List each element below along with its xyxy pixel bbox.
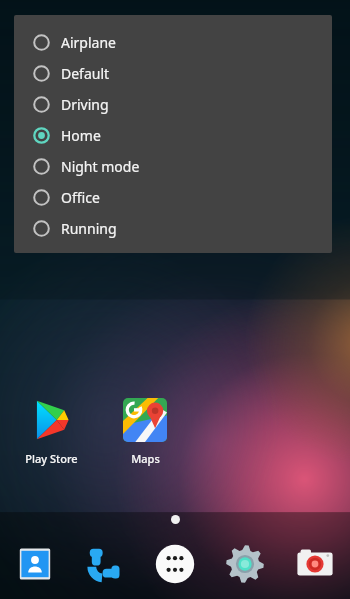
staticText: Office bbox=[61, 188, 100, 207]
staticText: Night mode bbox=[61, 157, 140, 176]
button[interactable]: Camera bbox=[280, 529, 350, 599]
button[interactable]: Apps bbox=[140, 529, 210, 599]
button[interactable]: Contacts bbox=[0, 529, 70, 599]
button[interactable]: Play Store bbox=[8, 398, 94, 466]
staticText: Default bbox=[61, 64, 110, 83]
staticText: Maps bbox=[131, 451, 160, 466]
button[interactable]: Phone bbox=[70, 529, 140, 599]
button[interactable]: Home bbox=[14, 120, 332, 151]
staticText: Home bbox=[61, 126, 101, 145]
button[interactable]: Night mode bbox=[14, 151, 332, 182]
staticText: Driving bbox=[61, 95, 109, 114]
staticText: Running bbox=[61, 219, 117, 238]
button[interactable]: Airplane bbox=[14, 27, 332, 58]
staticText: Airplane bbox=[61, 33, 116, 52]
button[interactable]: Driving bbox=[14, 89, 332, 120]
button[interactable]: Maps bbox=[102, 398, 188, 466]
button[interactable]: Running bbox=[14, 213, 332, 244]
button[interactable]: Settings bbox=[210, 529, 280, 599]
button[interactable]: Office bbox=[14, 182, 332, 213]
staticText: Play Store bbox=[25, 451, 78, 466]
button[interactable]: Default bbox=[14, 58, 332, 89]
